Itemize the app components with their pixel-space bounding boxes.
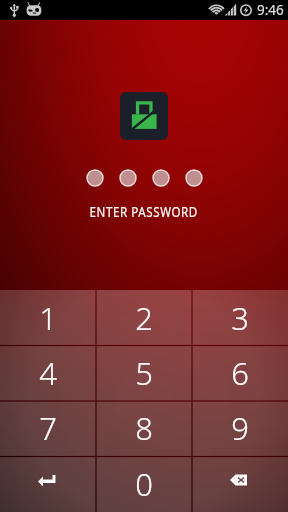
staticText: 1 bbox=[39, 297, 57, 339]
staticText: 3 bbox=[231, 297, 249, 339]
button[interactable]: 0 bbox=[96, 456, 192, 512]
staticText: 9:46 bbox=[257, 1, 284, 19]
staticText: 0 bbox=[135, 463, 153, 505]
button[interactable]: 5 bbox=[96, 345, 192, 400]
staticText: 4 bbox=[39, 352, 57, 394]
staticText: ENTER PASSWORD bbox=[90, 201, 198, 221]
staticText: 8 bbox=[135, 407, 153, 449]
staticText: 5 bbox=[135, 352, 153, 394]
button[interactable]: 7 bbox=[0, 400, 96, 456]
staticText: 2 bbox=[135, 297, 153, 339]
button[interactable]: 4 bbox=[0, 345, 96, 400]
button[interactable]: 3 bbox=[192, 290, 288, 345]
staticText: 6 bbox=[231, 352, 249, 394]
button[interactable]: 9 bbox=[192, 400, 288, 456]
button[interactable]: 1 bbox=[0, 290, 96, 345]
staticText: 9 bbox=[231, 407, 249, 449]
button[interactable]: 6 bbox=[192, 345, 288, 400]
staticText: 7 bbox=[39, 407, 57, 449]
button[interactable]: Enter bbox=[0, 456, 96, 512]
button[interactable]: 8 bbox=[96, 400, 192, 456]
button[interactable]: Delete bbox=[192, 456, 288, 512]
button[interactable]: 2 bbox=[96, 290, 192, 345]
